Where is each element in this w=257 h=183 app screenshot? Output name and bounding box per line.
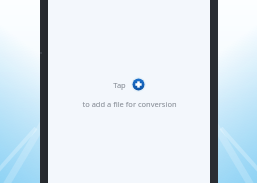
button[interactable]: Tap — [109, 75, 150, 94]
button[interactable]: Add a file — [131, 77, 146, 92]
staticText: to add a file for conversion — [82, 99, 177, 109]
staticText: Tap — [113, 80, 126, 90]
